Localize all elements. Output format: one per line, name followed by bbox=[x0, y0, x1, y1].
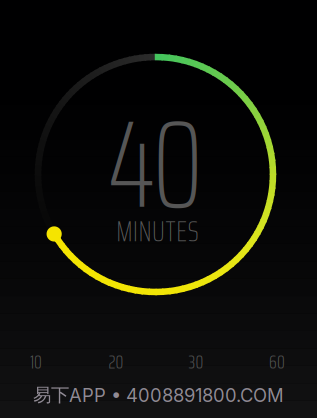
staticText: 易下APP • 4008891800.COM bbox=[33, 383, 284, 407]
staticText: MINUTES bbox=[116, 208, 199, 254]
staticText: 30 bbox=[188, 347, 203, 377]
staticText: 40 bbox=[108, 66, 203, 262]
staticText: 10 bbox=[30, 347, 42, 377]
staticText: 20 bbox=[108, 347, 123, 377]
staticText: 60 bbox=[269, 347, 285, 377]
